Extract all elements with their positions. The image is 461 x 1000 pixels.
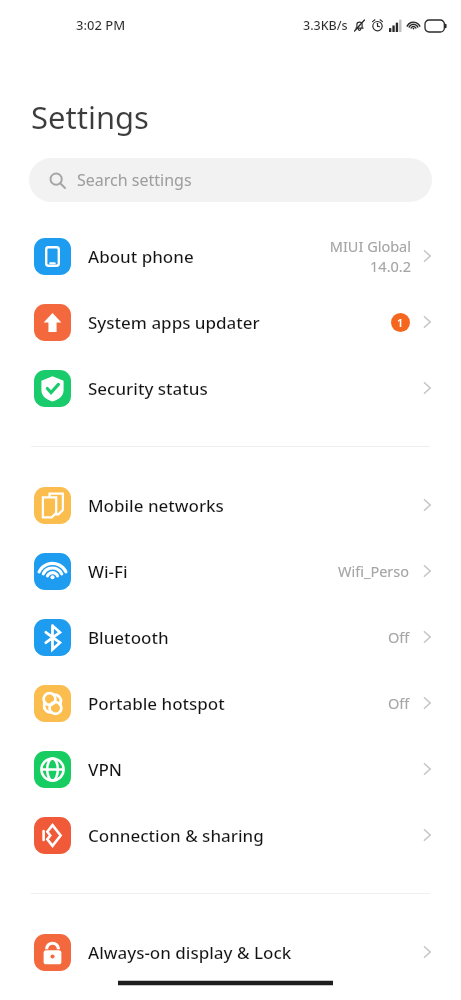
staticText: About phone <box>88 245 329 268</box>
button[interactable]: Bluetooth <box>0 604 461 670</box>
staticText: 3.3KB/s <box>303 17 348 34</box>
staticText: Connection & sharing <box>88 824 419 847</box>
button[interactable]: Mobile networks <box>0 472 461 538</box>
button[interactable]: System apps updater <box>0 289 461 355</box>
staticText: 3:02 PM <box>76 16 126 34</box>
staticText: Settings <box>31 96 149 138</box>
staticText: Off <box>388 693 410 713</box>
button[interactable]: Portable hotspot <box>0 670 461 736</box>
staticText: Bluetooth <box>88 626 388 649</box>
staticText: Wi-Fi <box>88 560 338 583</box>
staticText: Search settings <box>77 169 192 191</box>
staticText: Always-on display & Lock <box>88 941 419 964</box>
button[interactable]: Security status <box>0 355 461 421</box>
staticText: Portable hotspot <box>88 692 388 715</box>
staticText: MIUI Global <box>329 236 411 256</box>
staticText: System apps updater <box>88 311 391 334</box>
button[interactable]: Search settings <box>29 158 432 202</box>
button[interactable]: About phone <box>0 223 461 289</box>
staticText: VPN <box>88 758 419 781</box>
staticText: 1 <box>397 315 404 330</box>
staticText: Wifi_Perso <box>338 561 410 581</box>
staticText: Mobile networks <box>88 494 419 517</box>
button[interactable]: Connection & sharing <box>0 802 461 868</box>
button[interactable]: Wi-Fi <box>0 538 461 604</box>
staticText: Security status <box>88 377 419 400</box>
staticText: 14.0.2 <box>370 256 411 276</box>
button[interactable]: Always-on display & Lock <box>0 919 461 985</box>
staticText: Off <box>388 627 410 647</box>
button[interactable]: VPN <box>0 736 461 802</box>
